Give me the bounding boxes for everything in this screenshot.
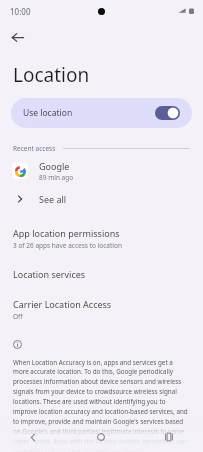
staticText: Use location — [23, 107, 73, 119]
staticText: 89 min ago — [39, 173, 74, 182]
staticText: Location — [13, 62, 90, 88]
button[interactable]: Google — [0, 156, 203, 186]
staticText: 10:00 — [10, 6, 31, 17]
button[interactable]: Back — [0, 424, 67, 450]
staticText: When Location Accuracy is on, apps and s… — [13, 358, 190, 452]
button[interactable]: Home — [67, 424, 135, 450]
staticText: Carrier Location Access — [13, 298, 112, 310]
button[interactable]: App location permissions — [0, 218, 203, 259]
button[interactable]: Recent apps — [135, 424, 203, 450]
button[interactable]: Back — [4, 24, 30, 50]
button[interactable]: Use location — [11, 98, 192, 128]
staticText: 3 of 26 apps have access to location — [13, 241, 122, 250]
button[interactable]: Carrier Location Access — [0, 289, 203, 330]
staticText: Off — [13, 312, 23, 321]
staticText: App location permissions — [13, 227, 120, 239]
button[interactable]: See all — [0, 186, 203, 212]
staticText: Google — [39, 160, 70, 172]
button[interactable]: Location services — [0, 259, 203, 289]
staticText: Recent access — [13, 144, 56, 153]
staticText: See all — [39, 193, 67, 205]
staticText: Location services — [13, 268, 86, 280]
